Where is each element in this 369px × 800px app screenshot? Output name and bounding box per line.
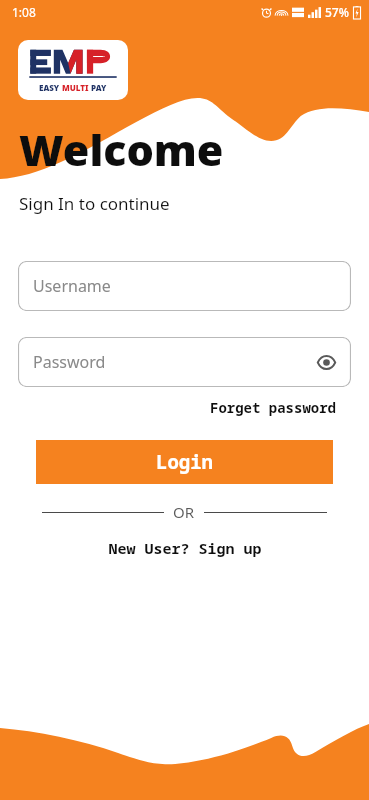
staticText: OR [173,502,195,522]
button[interactable]: New User? Sign up [104,536,266,560]
staticText: 1:08 [12,4,36,20]
staticText: EASY [39,82,62,93]
staticText: Welcome [19,120,224,179]
button[interactable]: Login [36,440,333,484]
button[interactable]: Show password [311,347,341,377]
button[interactable]: Username [18,261,351,311]
staticText: PAY [91,82,107,93]
staticText: Password [33,351,106,373]
staticText: Username [33,275,111,297]
staticText: MULTI [62,82,91,93]
staticText: Login [156,449,214,475]
button[interactable]: Forget password [208,396,338,419]
staticText: 57% [325,4,349,20]
button[interactable]: Password [18,337,351,387]
staticText: Sign In to continue [19,192,170,215]
